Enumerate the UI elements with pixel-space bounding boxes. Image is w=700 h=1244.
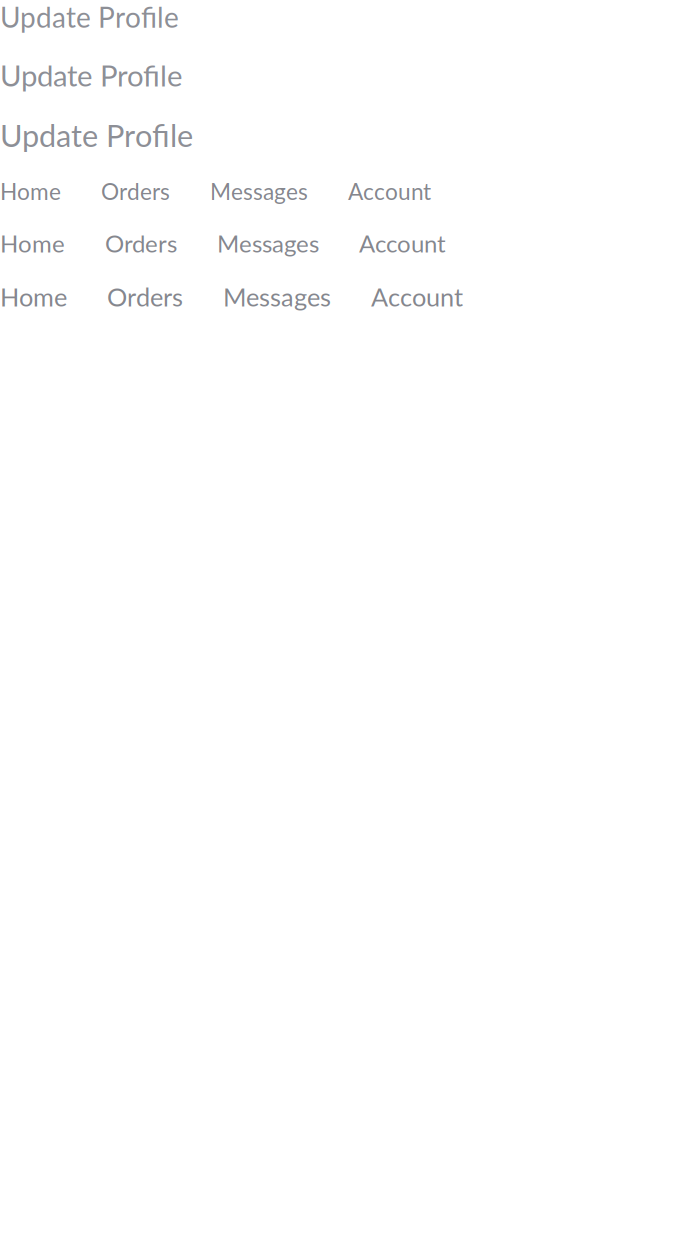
staticText: Home: [0, 178, 61, 205]
staticText: Home: [0, 229, 65, 258]
staticText: Update Profile: [0, 0, 179, 34]
staticText: Update Profile: [0, 117, 193, 154]
staticText: Account: [359, 229, 446, 258]
staticText: Messages: [223, 282, 331, 312]
staticText: Messages: [217, 229, 319, 258]
staticText: Update Profile: [0, 58, 182, 93]
staticText: Orders: [101, 178, 170, 205]
staticText: Orders: [105, 229, 177, 258]
staticText: Account: [371, 282, 463, 312]
staticText: Orders: [107, 282, 183, 312]
staticText: Account: [348, 178, 431, 205]
staticText: Home: [0, 282, 67, 312]
staticText: Messages: [210, 178, 308, 205]
